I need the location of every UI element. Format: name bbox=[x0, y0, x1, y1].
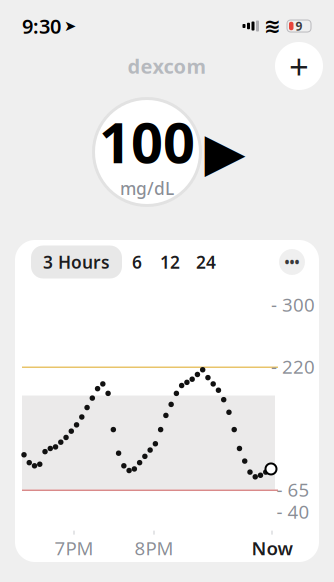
staticText: 9:30 bbox=[22, 13, 61, 39]
staticText: ➤ bbox=[64, 18, 76, 34]
button[interactable]: 3 Hours bbox=[31, 245, 122, 278]
staticText: 100 bbox=[99, 104, 195, 179]
staticText: - 300 bbox=[271, 292, 315, 317]
staticText: 24 bbox=[196, 250, 216, 273]
button[interactable]: More options bbox=[279, 249, 305, 275]
button[interactable]: Current glucose 100 milligrams per decil… bbox=[92, 96, 242, 208]
staticText: ≋ bbox=[264, 15, 281, 37]
staticText: dexcom bbox=[127, 53, 206, 79]
staticText: - 40 bbox=[276, 499, 309, 524]
button[interactable]: 24 bbox=[188, 245, 224, 278]
staticText: 3 Hours bbox=[43, 250, 110, 273]
staticText: - 65 bbox=[276, 477, 309, 502]
button[interactable]: 12 bbox=[152, 245, 188, 278]
staticText: 9 bbox=[295, 18, 302, 34]
staticText: + bbox=[289, 43, 309, 89]
staticText: ••• bbox=[284, 253, 299, 271]
staticText: mg/dL bbox=[120, 177, 174, 200]
staticText: 6 bbox=[132, 250, 142, 273]
staticText: - 220 bbox=[271, 354, 315, 379]
button[interactable]: Add event bbox=[275, 42, 323, 90]
staticText: 8PM bbox=[134, 536, 173, 560]
staticText: ▶ bbox=[204, 122, 245, 182]
staticText: 7PM bbox=[54, 536, 93, 560]
staticText: 12 bbox=[160, 250, 180, 273]
staticText: Now bbox=[251, 536, 292, 560]
button[interactable]: 6 bbox=[122, 245, 152, 278]
